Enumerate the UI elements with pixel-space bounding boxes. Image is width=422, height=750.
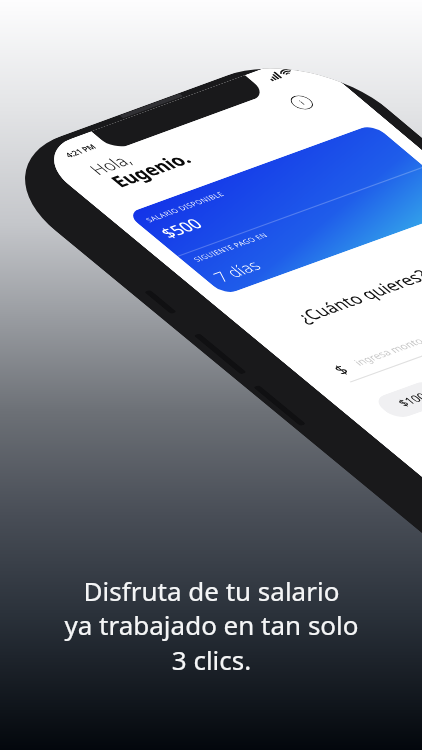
button[interactable]: SALARIO DISPONIBLE [114,163,422,353]
staticText: ¿Cuánto quieres? [173,416,398,454]
staticText: $500 [130,200,192,237]
staticText: SIGUIENTE PAGO EN [130,270,258,286]
staticText: SALARIO DISPONIBLE [130,178,265,194]
button[interactable]: $100 [140,610,244,660]
staticText: Disfruta de tu salario ya trabajado en t… [64,573,359,678]
staticText: Hola, [137,56,200,93]
staticText: Eugenio. [146,86,275,127]
staticText: $100 [170,622,214,648]
staticText: 7 días [130,302,202,339]
